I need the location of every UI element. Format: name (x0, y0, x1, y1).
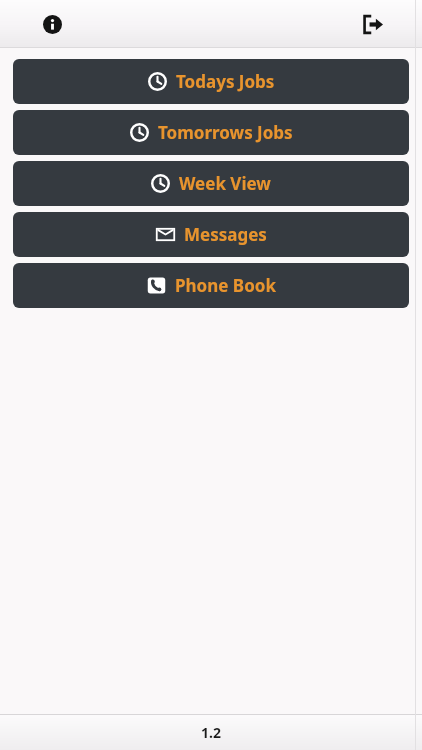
staticText: 1.2 (201, 723, 221, 742)
button[interactable]: Week View (13, 161, 409, 206)
button[interactable]: Log out (352, 4, 392, 44)
staticText: Messages (184, 223, 267, 246)
staticText: Todays Jobs (176, 70, 275, 93)
button[interactable]: Information (32, 4, 72, 44)
staticText: Tomorrows Jobs (158, 121, 293, 144)
staticText: Phone Book (175, 274, 276, 297)
staticText: Week View (179, 172, 271, 195)
button[interactable]: Messages (13, 212, 409, 257)
button[interactable]: Phone Book (13, 263, 409, 308)
button[interactable]: Tomorrows Jobs (13, 110, 409, 155)
button[interactable]: Todays Jobs (13, 59, 409, 104)
